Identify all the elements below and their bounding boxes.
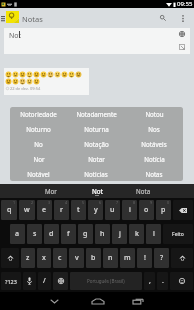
button[interactable]: Noturna	[67, 121, 125, 136]
button[interactable]: Nor	[10, 151, 67, 166]
staticText: o	[144, 205, 149, 215]
staticText: Notas	[145, 170, 163, 178]
staticText: No	[34, 140, 43, 148]
button[interactable]: Recent apps	[118, 292, 158, 310]
staticText: x	[42, 253, 46, 263]
button[interactable]: Notícia	[125, 151, 183, 166]
button[interactable]: Feito	[163, 224, 193, 244]
button[interactable]: Notação	[67, 136, 125, 151]
button[interactable]: s	[27, 224, 42, 244]
staticText: y	[94, 205, 98, 215]
staticText: !	[144, 253, 146, 263]
button[interactable]: q	[1, 200, 17, 220]
staticText: ?	[160, 253, 164, 263]
button[interactable]: t	[71, 200, 86, 220]
button[interactable]: Resize note	[179, 44, 185, 50]
button[interactable]: ,	[144, 272, 155, 290]
staticText: l	[153, 229, 155, 239]
button[interactable]: Notáveis	[125, 136, 183, 151]
button[interactable]: u	[105, 200, 120, 220]
button[interactable]: Notas	[125, 166, 183, 181]
button[interactable]: m	[120, 248, 135, 268]
button[interactable]: p	[156, 200, 171, 220]
button[interactable]: Shift	[1, 248, 19, 268]
button[interactable]: Hide keyboard	[34, 292, 74, 310]
button[interactable]: Navigation menu	[0, 8, 5, 28]
staticText: r	[60, 205, 63, 215]
button[interactable]: !	[137, 248, 152, 268]
button[interactable]: n	[103, 248, 118, 268]
staticText: Not	[9, 31, 22, 41]
button[interactable]: Change keyboard language	[53, 272, 68, 290]
button[interactable]: More options	[175, 8, 191, 28]
button[interactable]: k	[129, 224, 144, 244]
button[interactable]: Nota	[120, 184, 166, 198]
button[interactable]: c	[53, 248, 67, 268]
button[interactable]: Home	[78, 292, 118, 310]
button[interactable]: /	[38, 272, 51, 290]
button[interactable]: Shift	[171, 248, 193, 268]
button[interactable]: b	[86, 248, 101, 268]
staticText: f	[67, 229, 70, 239]
button[interactable]: Notadamente	[67, 107, 125, 121]
staticText: q	[7, 205, 12, 215]
button[interactable]: r	[54, 200, 69, 220]
staticText: Nos	[148, 125, 160, 133]
button[interactable]: g	[78, 224, 93, 244]
staticText: /	[43, 276, 46, 286]
staticText: u	[110, 205, 115, 215]
staticText: Mor	[45, 187, 57, 195]
staticText: Nor	[33, 155, 45, 163]
button[interactable]: Noticias	[67, 166, 125, 181]
staticText: d	[49, 229, 54, 239]
button[interactable]: z	[21, 248, 35, 268]
button[interactable]: Noturno	[10, 121, 67, 136]
staticText: g	[83, 229, 88, 239]
button[interactable]: a	[10, 224, 25, 244]
button[interactable]: No	[10, 136, 67, 151]
button[interactable]: Português (Brasil)	[70, 272, 142, 290]
button[interactable]: d	[44, 224, 59, 244]
button[interactable]: Notoriedade	[10, 107, 67, 121]
button[interactable]: v	[69, 248, 84, 268]
button[interactable]: x	[37, 248, 51, 268]
button[interactable]: w	[19, 200, 35, 220]
staticText: Notáveis	[141, 140, 167, 148]
button[interactable]: Emoji	[170, 272, 193, 290]
button[interactable]: Mor	[28, 184, 74, 198]
staticText: a	[15, 229, 20, 239]
button[interactable]: Not	[74, 184, 120, 198]
staticText: j	[119, 229, 121, 239]
button[interactable]: Notável	[10, 166, 67, 181]
button[interactable]: Nos	[125, 121, 183, 136]
staticText: 8	[133, 200, 136, 205]
button[interactable]: h	[95, 224, 110, 244]
button[interactable]: i	[122, 200, 137, 220]
button[interactable]: e	[37, 200, 52, 220]
staticText: 6	[99, 200, 102, 205]
button[interactable]: l	[146, 224, 161, 244]
button[interactable]: j	[112, 224, 127, 244]
staticText: z	[26, 253, 30, 263]
button[interactable]: Notou	[125, 107, 183, 121]
button[interactable]: Notar	[67, 151, 125, 166]
staticText: b	[91, 253, 96, 263]
staticText: 09:55	[177, 0, 193, 8]
button[interactable]: y	[88, 200, 103, 220]
button[interactable]: .	[157, 272, 168, 290]
button[interactable]: Voice input	[23, 272, 36, 290]
button[interactable]: Search	[155, 8, 171, 28]
staticText: 3	[48, 200, 51, 205]
button[interactable]: Web search	[179, 31, 185, 37]
button[interactable]: o	[139, 200, 154, 220]
staticText: 7	[116, 200, 119, 205]
staticText: 4	[65, 200, 68, 205]
button[interactable]: ?	[154, 248, 169, 268]
button[interactable]: f	[61, 224, 76, 244]
button[interactable]: Backspace	[173, 200, 193, 220]
staticText: t	[77, 205, 80, 215]
staticText: Português (Brasil)	[87, 278, 125, 284]
staticText: Notoriedade	[20, 110, 57, 118]
button[interactable]: ?123	[1, 272, 21, 290]
staticText: p	[161, 205, 166, 215]
